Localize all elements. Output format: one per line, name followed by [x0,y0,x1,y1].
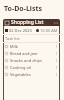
button[interactable]: Bread and jam [3,50,60,57]
button[interactable]: Cooking oil [3,64,60,71]
staticText: 10:00 AM [40,28,58,33]
staticText: Bread and jam [10,51,38,56]
other: More [53,20,59,26]
button[interactable]: Vegetables [3,71,60,78]
staticText: 02 Dec 2023 [9,28,32,33]
staticText: Vegetables [10,72,31,77]
staticText: Shopping List [11,19,44,26]
other: More options [54,51,59,56]
button[interactable]: Snacks and chips [3,57,60,64]
staticText: Milk [10,44,18,49]
other: More options [54,72,59,77]
button[interactable]: Shopping List [3,19,60,26]
staticText: Snacks and chips [10,58,42,63]
staticText: Cooking oil [10,65,31,70]
other: More options [54,65,59,70]
other: More options [54,58,59,63]
button[interactable]: Milk [3,43,60,50]
staticText: To-Do-Lists [4,4,42,14]
staticText: Task list [5,36,20,41]
other: More options [54,44,59,49]
